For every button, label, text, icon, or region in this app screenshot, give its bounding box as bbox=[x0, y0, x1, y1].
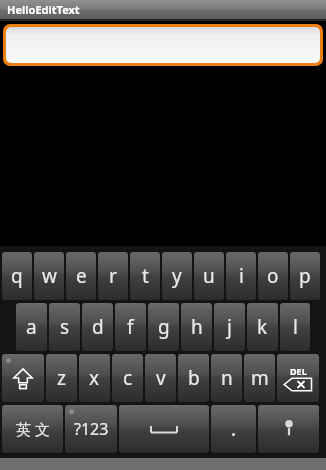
button[interactable]: q bbox=[2, 252, 32, 300]
button[interactable]: Space bbox=[119, 405, 209, 453]
button[interactable]: r bbox=[98, 252, 128, 300]
staticText: g bbox=[158, 314, 170, 340]
staticText: s bbox=[60, 314, 70, 340]
button[interactable]: l bbox=[280, 303, 310, 351]
staticText: w bbox=[42, 263, 57, 289]
staticText: x bbox=[89, 365, 100, 391]
button[interactable]: x bbox=[79, 354, 110, 402]
button[interactable]: w bbox=[34, 252, 64, 300]
staticText: z bbox=[57, 365, 66, 391]
button[interactable]: s bbox=[49, 303, 80, 351]
staticText: y bbox=[172, 263, 182, 289]
staticText: m bbox=[251, 365, 269, 391]
button[interactable] bbox=[6, 27, 320, 63]
button[interactable]: a bbox=[16, 303, 47, 351]
staticText: q bbox=[11, 263, 23, 289]
button[interactable]: e bbox=[66, 252, 96, 300]
staticText: u bbox=[203, 263, 215, 289]
staticText: ?123 bbox=[74, 418, 109, 440]
staticText: b bbox=[188, 365, 200, 391]
button[interactable]: u bbox=[194, 252, 224, 300]
staticText: o bbox=[267, 263, 279, 289]
staticText: j bbox=[227, 314, 232, 340]
button[interactable]: h bbox=[181, 303, 212, 351]
staticText: a bbox=[26, 314, 37, 340]
button[interactable]: m bbox=[244, 354, 275, 402]
staticText: v bbox=[156, 365, 166, 391]
button[interactable]: Shift bbox=[2, 354, 44, 402]
staticText: i bbox=[239, 263, 244, 289]
button[interactable]: i bbox=[226, 252, 256, 300]
button[interactable]: n bbox=[211, 354, 242, 402]
button[interactable]: p bbox=[290, 252, 320, 300]
staticText: n bbox=[221, 365, 233, 391]
button[interactable]: o bbox=[258, 252, 288, 300]
staticText: k bbox=[257, 314, 268, 340]
button[interactable]: b bbox=[178, 354, 209, 402]
button[interactable]: d bbox=[82, 303, 113, 351]
staticText: HelloEditText bbox=[7, 2, 80, 17]
staticText: 英 文 bbox=[16, 419, 50, 439]
button[interactable]: y bbox=[162, 252, 192, 300]
button[interactable]: g bbox=[148, 303, 179, 351]
button[interactable]: v bbox=[145, 354, 176, 402]
staticText: p bbox=[299, 263, 311, 289]
button[interactable]: Voice input bbox=[258, 405, 319, 453]
staticText: t bbox=[142, 263, 149, 289]
button[interactable]: c bbox=[112, 354, 143, 402]
button[interactable]: f bbox=[115, 303, 146, 351]
staticText: f bbox=[127, 314, 134, 340]
staticText: d bbox=[92, 314, 104, 340]
staticText: . bbox=[231, 416, 237, 442]
button[interactable]: Period bbox=[211, 405, 256, 453]
staticText: c bbox=[123, 365, 133, 391]
button[interactable]: z bbox=[46, 354, 77, 402]
button[interactable]: Delete bbox=[277, 354, 319, 402]
staticText: h bbox=[191, 314, 203, 340]
staticText: DEL bbox=[290, 365, 307, 377]
button[interactable]: j bbox=[214, 303, 245, 351]
button[interactable]: ?123 bbox=[65, 405, 117, 453]
button[interactable]: k bbox=[247, 303, 278, 351]
button[interactable]: t bbox=[130, 252, 160, 300]
staticText: r bbox=[109, 263, 117, 289]
staticText: e bbox=[76, 263, 87, 289]
button[interactable]: 英 文 bbox=[2, 405, 63, 453]
staticText: l bbox=[293, 314, 298, 340]
